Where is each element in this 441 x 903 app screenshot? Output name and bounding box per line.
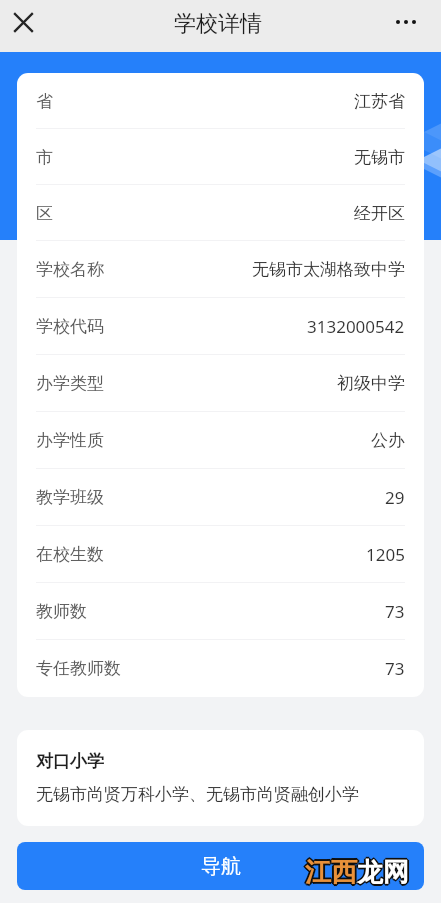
staticText: 无锡市尚贤万科小学、无锡市尚贤融创小学 bbox=[36, 784, 359, 805]
button[interactable]: 省 bbox=[17, 73, 424, 129]
staticText: 办学类型 bbox=[36, 373, 104, 394]
staticText: 73 bbox=[385, 600, 405, 623]
button[interactable]: More options bbox=[386, 2, 426, 42]
staticText: 29 bbox=[385, 486, 405, 509]
staticText: 无锡市太湖格致中学 bbox=[252, 259, 405, 280]
staticText: 龙 bbox=[356, 855, 382, 888]
staticText: 对口小学 bbox=[36, 751, 104, 772]
staticText: 导航 bbox=[201, 854, 241, 879]
button[interactable]: 专任教师数 bbox=[17, 640, 424, 697]
staticText: 3132000542 bbox=[307, 315, 405, 338]
staticText: 省 bbox=[36, 91, 53, 112]
staticText: 西 bbox=[332, 855, 358, 888]
staticText: 西 bbox=[330, 857, 356, 890]
button[interactable]: 在校生数 bbox=[17, 526, 424, 583]
staticText: 网 bbox=[384, 857, 410, 890]
staticText: 江 bbox=[307, 856, 333, 889]
button[interactable]: 办学性质 bbox=[17, 412, 424, 469]
staticText: 办学性质 bbox=[36, 430, 104, 451]
staticText: 1205 bbox=[366, 543, 405, 566]
staticText: 西 bbox=[333, 856, 359, 889]
staticText: 学校代码 bbox=[36, 316, 104, 337]
staticText: 专任教师数 bbox=[36, 658, 121, 679]
staticText: 龙 bbox=[356, 857, 382, 890]
staticText: 江苏省 bbox=[354, 91, 405, 112]
button[interactable]: 导航 bbox=[17, 842, 424, 890]
staticText: 江 bbox=[305, 858, 331, 891]
staticText: 龙 bbox=[359, 856, 385, 889]
button[interactable]: Close bbox=[3, 2, 43, 42]
staticText: 初级中学 bbox=[337, 373, 405, 394]
staticText: 江 bbox=[304, 855, 330, 888]
staticText: 西 bbox=[330, 855, 356, 888]
staticText: 西 bbox=[331, 856, 357, 889]
staticText: 教学班级 bbox=[36, 487, 104, 508]
staticText: 区 bbox=[36, 203, 53, 224]
staticText: 市 bbox=[36, 147, 53, 168]
staticText: 网 bbox=[385, 856, 411, 889]
button[interactable]: 市 bbox=[17, 129, 424, 185]
staticText: 网 bbox=[384, 855, 410, 888]
button[interactable]: 教师数 bbox=[17, 583, 424, 640]
staticText: 学校详情 bbox=[174, 10, 262, 38]
staticText: 73 bbox=[385, 657, 405, 680]
staticText: 西 bbox=[331, 858, 357, 891]
staticText: 公办 bbox=[371, 430, 405, 451]
staticText: 西 bbox=[331, 854, 357, 887]
button[interactable]: 对口小学 bbox=[17, 730, 424, 826]
staticText: 江 bbox=[304, 857, 330, 890]
staticText: 网 bbox=[382, 855, 408, 888]
button[interactable]: 学校名称 bbox=[17, 241, 424, 298]
staticText: 教师数 bbox=[36, 601, 87, 622]
button[interactable]: 办学类型 bbox=[17, 355, 424, 412]
button[interactable]: 教学班级 bbox=[17, 469, 424, 526]
staticText: 经开区 bbox=[354, 203, 405, 224]
staticText: 网 bbox=[382, 857, 408, 890]
staticText: 龙 bbox=[358, 855, 384, 888]
staticText: 龙 bbox=[358, 857, 384, 890]
staticText: 江 bbox=[306, 857, 332, 890]
staticText: 无锡市 bbox=[354, 147, 405, 168]
button[interactable]: 区 bbox=[17, 185, 424, 241]
staticText: 龙 bbox=[357, 854, 383, 887]
staticText: 西 bbox=[332, 857, 358, 890]
staticText: 网 bbox=[383, 858, 409, 891]
staticText: 龙 bbox=[357, 858, 383, 891]
staticText: 网 bbox=[383, 856, 409, 889]
staticText: 江 bbox=[303, 856, 329, 889]
staticText: 西 bbox=[329, 856, 355, 889]
staticText: 在校生数 bbox=[36, 544, 104, 565]
staticText: 学校名称 bbox=[36, 259, 104, 280]
staticText: 龙 bbox=[357, 856, 383, 889]
staticText: 网 bbox=[383, 854, 409, 887]
button[interactable]: 学校代码 bbox=[17, 298, 424, 355]
staticText: 龙 bbox=[355, 856, 381, 889]
staticText: 江 bbox=[305, 854, 331, 887]
staticText: 江 bbox=[306, 855, 332, 888]
staticText: 江 bbox=[305, 856, 331, 889]
staticText: 网 bbox=[381, 856, 407, 889]
